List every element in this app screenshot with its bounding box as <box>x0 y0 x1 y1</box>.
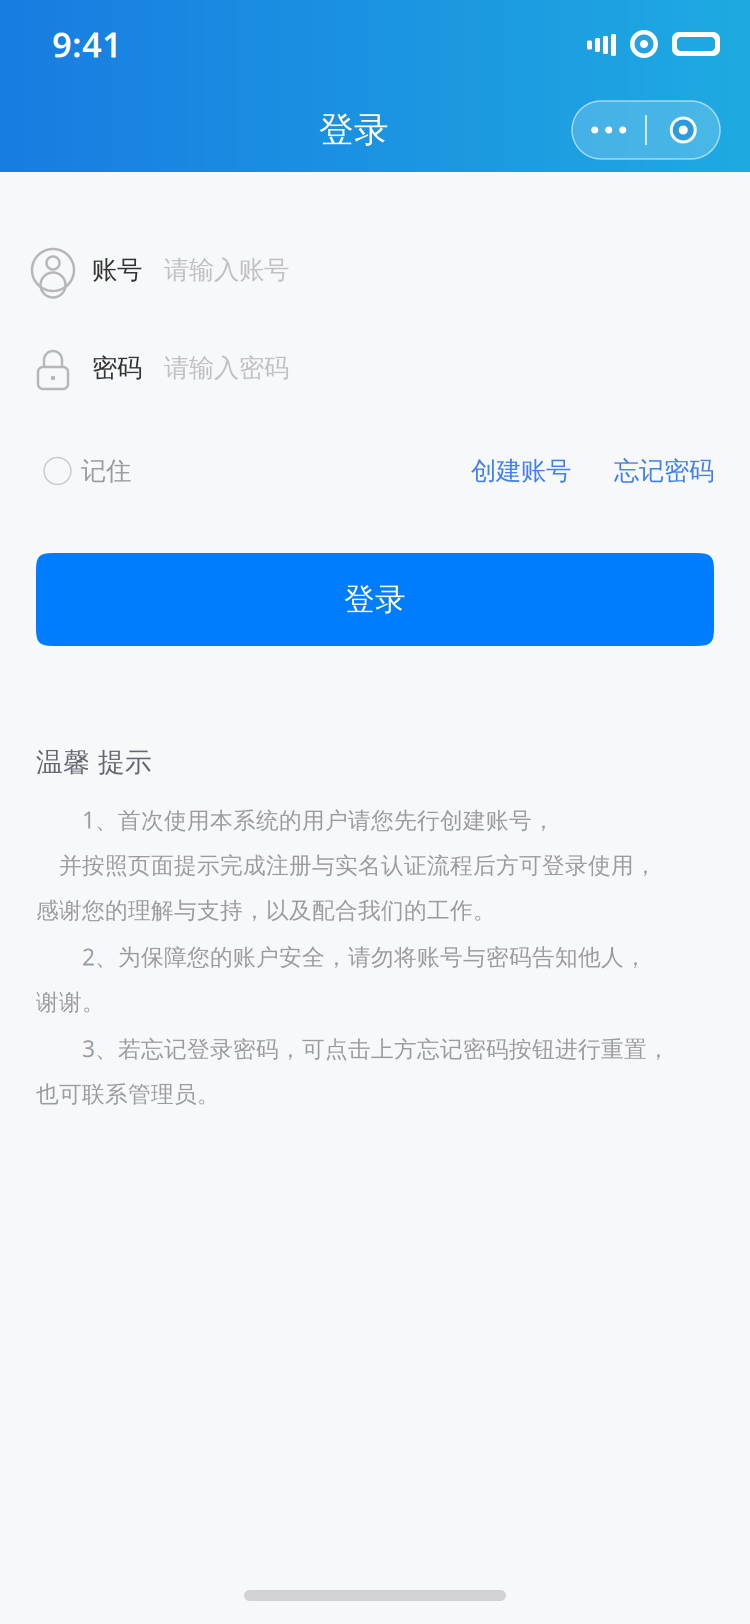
button[interactable]: 记住 <box>0 427 147 515</box>
staticText: 创建账号 <box>471 455 571 486</box>
button[interactable]: 更多 <box>572 101 645 159</box>
staticText: 忘记密码 <box>614 455 714 486</box>
button[interactable]: 登录 <box>36 553 714 646</box>
button[interactable]: 创建账号 <box>448 427 594 515</box>
staticText: 记住 <box>81 455 131 486</box>
staticText: 密码 <box>92 352 142 383</box>
staticText: 请输入密码 <box>164 352 289 383</box>
staticText: 账号 <box>92 254 142 285</box>
staticText: 登录 <box>344 581 406 618</box>
staticText: 请输入账号 <box>164 254 289 285</box>
staticText: 1、首次使用本系统的用户请您先行创建账号， 并按照页面提示完成注册与实名认证流程… <box>36 805 670 1108</box>
button[interactable]: 关闭 <box>647 101 720 159</box>
button[interactable]: 忘记密码 <box>594 427 750 515</box>
staticText: 登录 <box>319 109 389 151</box>
staticText: 温馨 提示 <box>36 746 152 779</box>
staticText: 9:41 <box>52 21 122 67</box>
